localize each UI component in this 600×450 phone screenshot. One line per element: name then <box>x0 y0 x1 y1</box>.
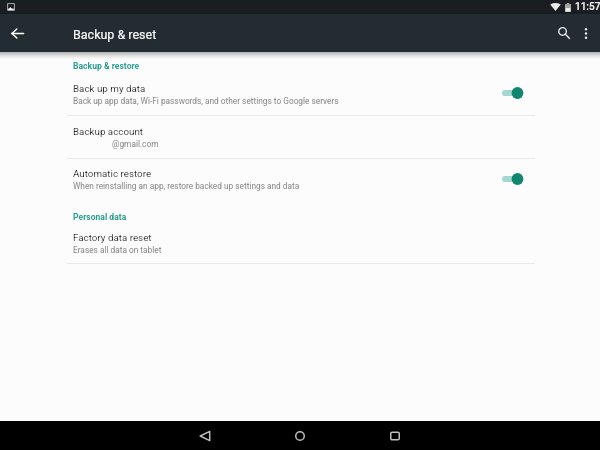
button[interactable] <box>0 159 600 200</box>
staticText: Automatic restore <box>73 168 152 179</box>
staticText: Backup account <box>73 126 144 137</box>
staticText: When reinstalling an app, restore backed… <box>73 181 300 191</box>
staticText: Factory data reset <box>73 232 152 243</box>
button[interactable]: Navigate up <box>0 16 34 50</box>
button[interactable] <box>0 228 600 263</box>
staticText: Personal data <box>73 212 127 222</box>
staticText: Backup & reset <box>73 27 157 42</box>
button[interactable]: Recent apps <box>378 421 412 450</box>
button[interactable]: Search <box>547 16 581 50</box>
button[interactable] <box>0 76 600 115</box>
button[interactable] <box>0 116 600 158</box>
button[interactable]: Back <box>188 421 222 450</box>
staticText: Back up app data, Wi-Fi passwords, and o… <box>73 96 339 106</box>
button[interactable]: Home <box>283 421 317 450</box>
staticText: 11:57 <box>575 1 600 13</box>
staticText: Back up my data <box>73 83 146 94</box>
staticText: @gmail.com <box>112 139 159 149</box>
staticText: Erases all data on tablet <box>73 245 162 255</box>
button[interactable]: More options <box>572 19 600 47</box>
staticText: Backup & restore <box>73 61 140 71</box>
